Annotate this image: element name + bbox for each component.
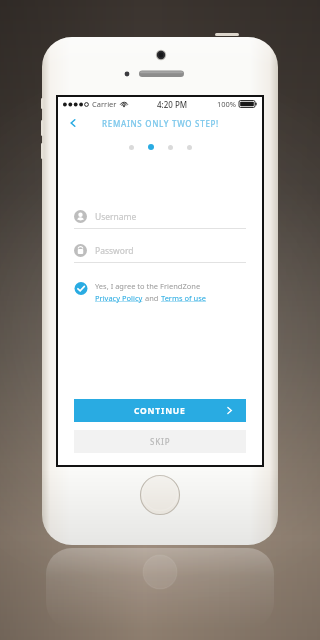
staticText: REMAINS ONLY TWO STEP! xyxy=(102,118,219,129)
button[interactable]: CONTINUE xyxy=(74,399,246,422)
staticText: Carrier xyxy=(92,99,117,109)
button[interactable] xyxy=(187,145,192,150)
staticText: 4:20 PM xyxy=(157,99,188,110)
staticText: and xyxy=(143,293,161,303)
button[interactable]: SKIP xyxy=(74,430,246,453)
button[interactable]: Yes, I agree to the FriendZone xyxy=(74,281,246,303)
button[interactable] xyxy=(168,145,173,150)
button[interactable] xyxy=(129,145,134,150)
staticText: Password xyxy=(95,245,134,257)
staticText: CONTINUE xyxy=(134,405,186,417)
button[interactable]: Username xyxy=(74,210,246,229)
button[interactable]: Back xyxy=(63,113,83,133)
button[interactable] xyxy=(148,144,154,150)
button[interactable]: Terms of use xyxy=(161,293,207,303)
staticText: 100% xyxy=(217,99,237,109)
button[interactable]: Privacy Policy xyxy=(95,293,143,303)
staticText: Username xyxy=(95,211,137,223)
staticText: Yes, I agree to the FriendZone xyxy=(95,281,201,291)
staticText: SKIP xyxy=(150,436,171,447)
button[interactable]: Password xyxy=(74,244,246,263)
